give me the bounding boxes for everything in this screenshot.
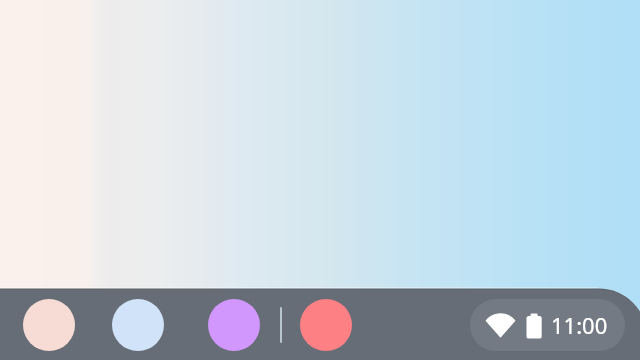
button[interactable]: Messages <box>300 299 352 351</box>
button[interactable]: Chrome <box>112 299 164 351</box>
button[interactable]: Status: Wi-Fi, battery full, 11:00 <box>470 299 625 351</box>
button[interactable]: Files <box>23 299 75 351</box>
staticText: 11:00 <box>551 310 608 340</box>
button[interactable]: Photos <box>208 299 260 351</box>
